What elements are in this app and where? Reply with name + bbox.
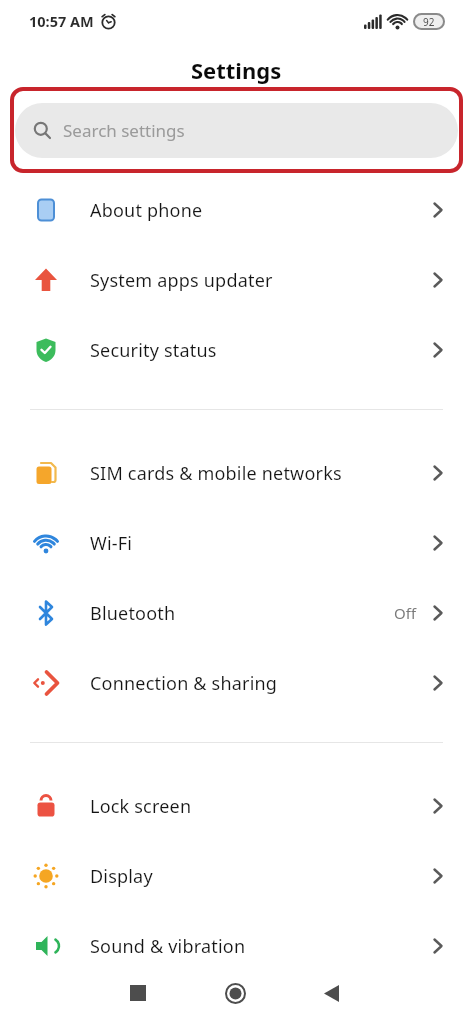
button[interactable]: Display	[0, 841, 473, 911]
staticText: Search settings	[63, 119, 185, 142]
staticText: Lock screen	[90, 794, 192, 819]
staticText: Display	[90, 864, 153, 889]
staticText: Connection & sharing	[90, 671, 278, 696]
staticText: Wi-Fi	[90, 531, 133, 556]
staticText: Bluetooth	[90, 601, 176, 626]
staticText: Security status	[90, 338, 217, 363]
button[interactable]: Security status	[0, 315, 473, 385]
staticText: System apps updater	[90, 268, 273, 293]
staticText: 92	[423, 15, 435, 29]
button[interactable]: System apps updater	[0, 245, 473, 315]
staticText: About phone	[90, 198, 203, 223]
staticText: Settings	[191, 55, 282, 85]
button[interactable]: Bluetooth	[0, 578, 473, 648]
button[interactable]: Search settings	[15, 103, 458, 158]
button[interactable]: Wi-Fi	[0, 508, 473, 578]
staticText: Off	[394, 603, 417, 623]
button[interactable]: Lock screen	[0, 771, 473, 841]
button[interactable]: About phone	[0, 175, 473, 245]
button[interactable]: Sound & vibration	[0, 911, 473, 981]
staticText: SIM cards & mobile networks	[90, 461, 342, 486]
button[interactable]: SIM cards & mobile networks	[0, 438, 473, 508]
staticText: Sound & vibration	[90, 934, 246, 959]
button[interactable]	[225, 983, 246, 1004]
button[interactable]: Connection & sharing	[0, 648, 473, 718]
staticText: 10:57 AM	[29, 11, 94, 31]
button[interactable]	[324, 985, 339, 1002]
